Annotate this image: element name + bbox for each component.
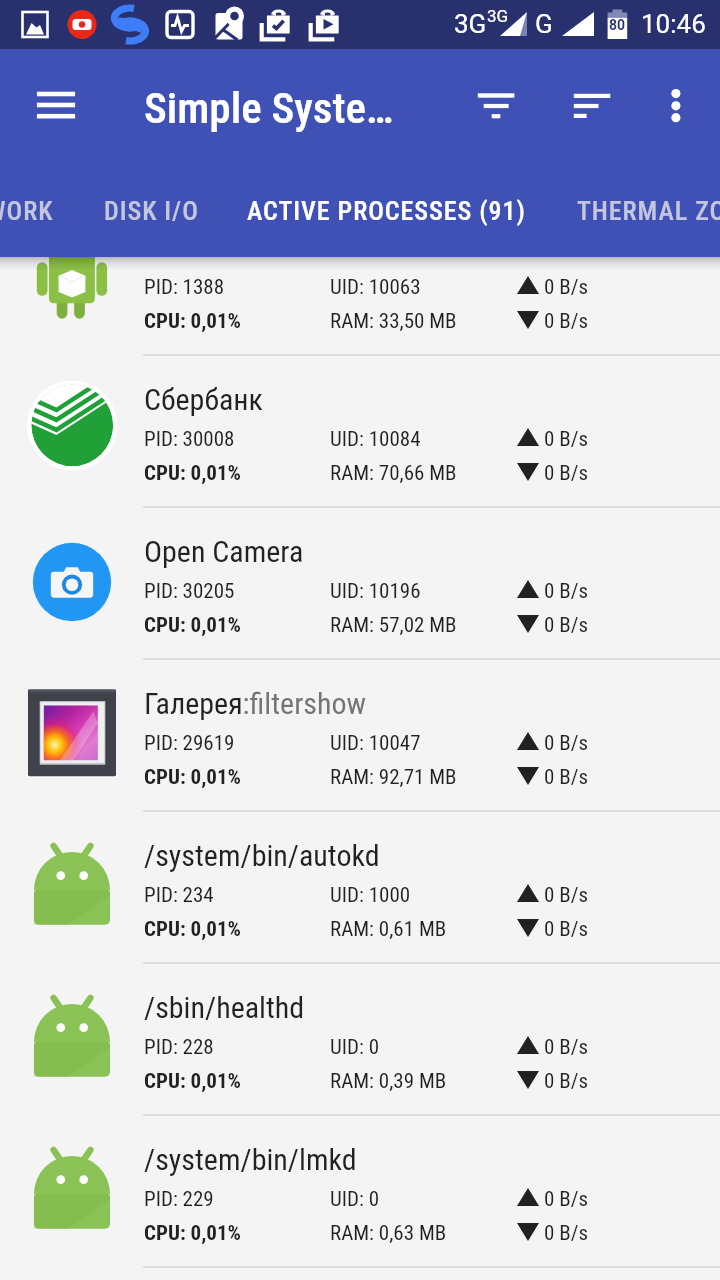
button[interactable]: DISK I/O — [79, 171, 224, 257]
button[interactable]: /sbin/healthd — [0, 962, 720, 1114]
staticText: DISK I/O — [104, 196, 199, 226]
staticText: Галерея:filtershow — [144, 686, 367, 721]
staticText: THERMAL ZONES — [577, 196, 720, 226]
staticText: CPU: 0,01% — [144, 917, 241, 942]
staticText: UID: 10047 — [330, 731, 421, 756]
staticText: 0 B/s — [544, 275, 589, 300]
button[interactable]: Галерея:filtershow — [0, 658, 720, 810]
staticText: RAM: 92,71 MB — [330, 765, 457, 790]
button[interactable]: Sort order — [554, 67, 634, 153]
staticText: CPU: 0,01% — [144, 1221, 241, 1246]
staticText: CPU: 0,01% — [144, 613, 241, 638]
staticText: PID: 30205 — [144, 579, 235, 604]
staticText: RAM: 0,63 MB — [330, 1221, 447, 1246]
staticText: CPU: 0,01% — [144, 461, 241, 486]
staticText: /sbin/healthd — [144, 990, 305, 1025]
staticText: CPU: 0,01% — [144, 1069, 241, 1094]
staticText: 0 B/s — [544, 731, 589, 756]
staticText: /system/bin/autokd — [144, 838, 380, 873]
staticText: UID: 0 — [330, 1187, 380, 1212]
staticText: UID: 10196 — [330, 579, 421, 604]
staticText: PID: 229 — [144, 1187, 214, 1212]
staticText: RAM: 0,61 MB — [330, 917, 447, 942]
staticText: UID: 10063 — [330, 275, 421, 300]
staticText: PID: 29619 — [144, 731, 235, 756]
staticText: RAM: 57,02 MB — [330, 613, 457, 638]
staticText: PID: 228 — [144, 1035, 214, 1060]
button[interactable]: Сбербанк — [0, 354, 720, 506]
button[interactable]: Sort — [456, 67, 536, 153]
staticText: 3G — [454, 9, 487, 39]
staticText: 0 B/s — [544, 883, 589, 908]
staticText: 0 B/s — [544, 579, 589, 604]
button[interactable]: Open Camera — [0, 506, 720, 658]
staticText: 0 B/s — [544, 1069, 589, 1094]
staticText: CPU: 0,01% — [144, 309, 241, 334]
staticText: ACTIVE PROCESSES (91) — [247, 196, 526, 226]
staticText: UID: 10084 — [330, 427, 421, 452]
button[interactable]: /system/bin/lmkd — [0, 1114, 720, 1266]
staticText: /system/bin/lmkd — [144, 1142, 357, 1177]
button[interactable]: ACTIVE PROCESSES (91) — [222, 171, 551, 257]
staticText: Open Camera — [144, 534, 304, 569]
button[interactable]: Open navigation drawer — [16, 67, 96, 153]
staticText: 0 B/s — [544, 1187, 589, 1212]
staticText: G — [535, 9, 553, 39]
staticText: 10:46 — [641, 9, 706, 39]
staticText: UID: 0 — [330, 1035, 380, 1060]
staticText: PID: 234 — [144, 883, 214, 908]
staticText: Сбербанк — [144, 382, 264, 417]
staticText: RAM: 70,66 MB — [330, 461, 457, 486]
button[interactable]: More options — [638, 67, 714, 153]
staticText: PID: 1388 — [144, 275, 225, 300]
staticText: 0 B/s — [544, 427, 589, 452]
staticText: PID: 30008 — [144, 427, 235, 452]
staticText: 0 B/s — [544, 461, 589, 486]
staticText: 3G — [487, 6, 509, 26]
staticText: CPU: 0,01% — [144, 765, 241, 790]
staticText: RAM: 0,39 MB — [330, 1069, 447, 1094]
staticText: 0 B/s — [544, 917, 589, 942]
staticText: 0 B/s — [544, 765, 589, 790]
staticText: 0 B/s — [544, 1221, 589, 1246]
staticText: RAM: 33,50 MB — [330, 309, 457, 334]
staticText: UID: 1000 — [330, 883, 411, 908]
button[interactable]: /system/bin/autokd — [0, 810, 720, 962]
button[interactable]: NETWORK — [0, 171, 79, 257]
button[interactable]: PID: 1388 — [0, 202, 720, 354]
staticText: 80 — [609, 17, 626, 33]
button[interactable]: THERMAL ZONES — [552, 171, 720, 257]
staticText: Simple Syste… — [144, 83, 394, 133]
staticText: 0 B/s — [544, 309, 589, 334]
staticText: 0 B/s — [544, 613, 589, 638]
staticText: 0 B/s — [544, 1035, 589, 1060]
staticText: NETWORK — [0, 196, 54, 226]
